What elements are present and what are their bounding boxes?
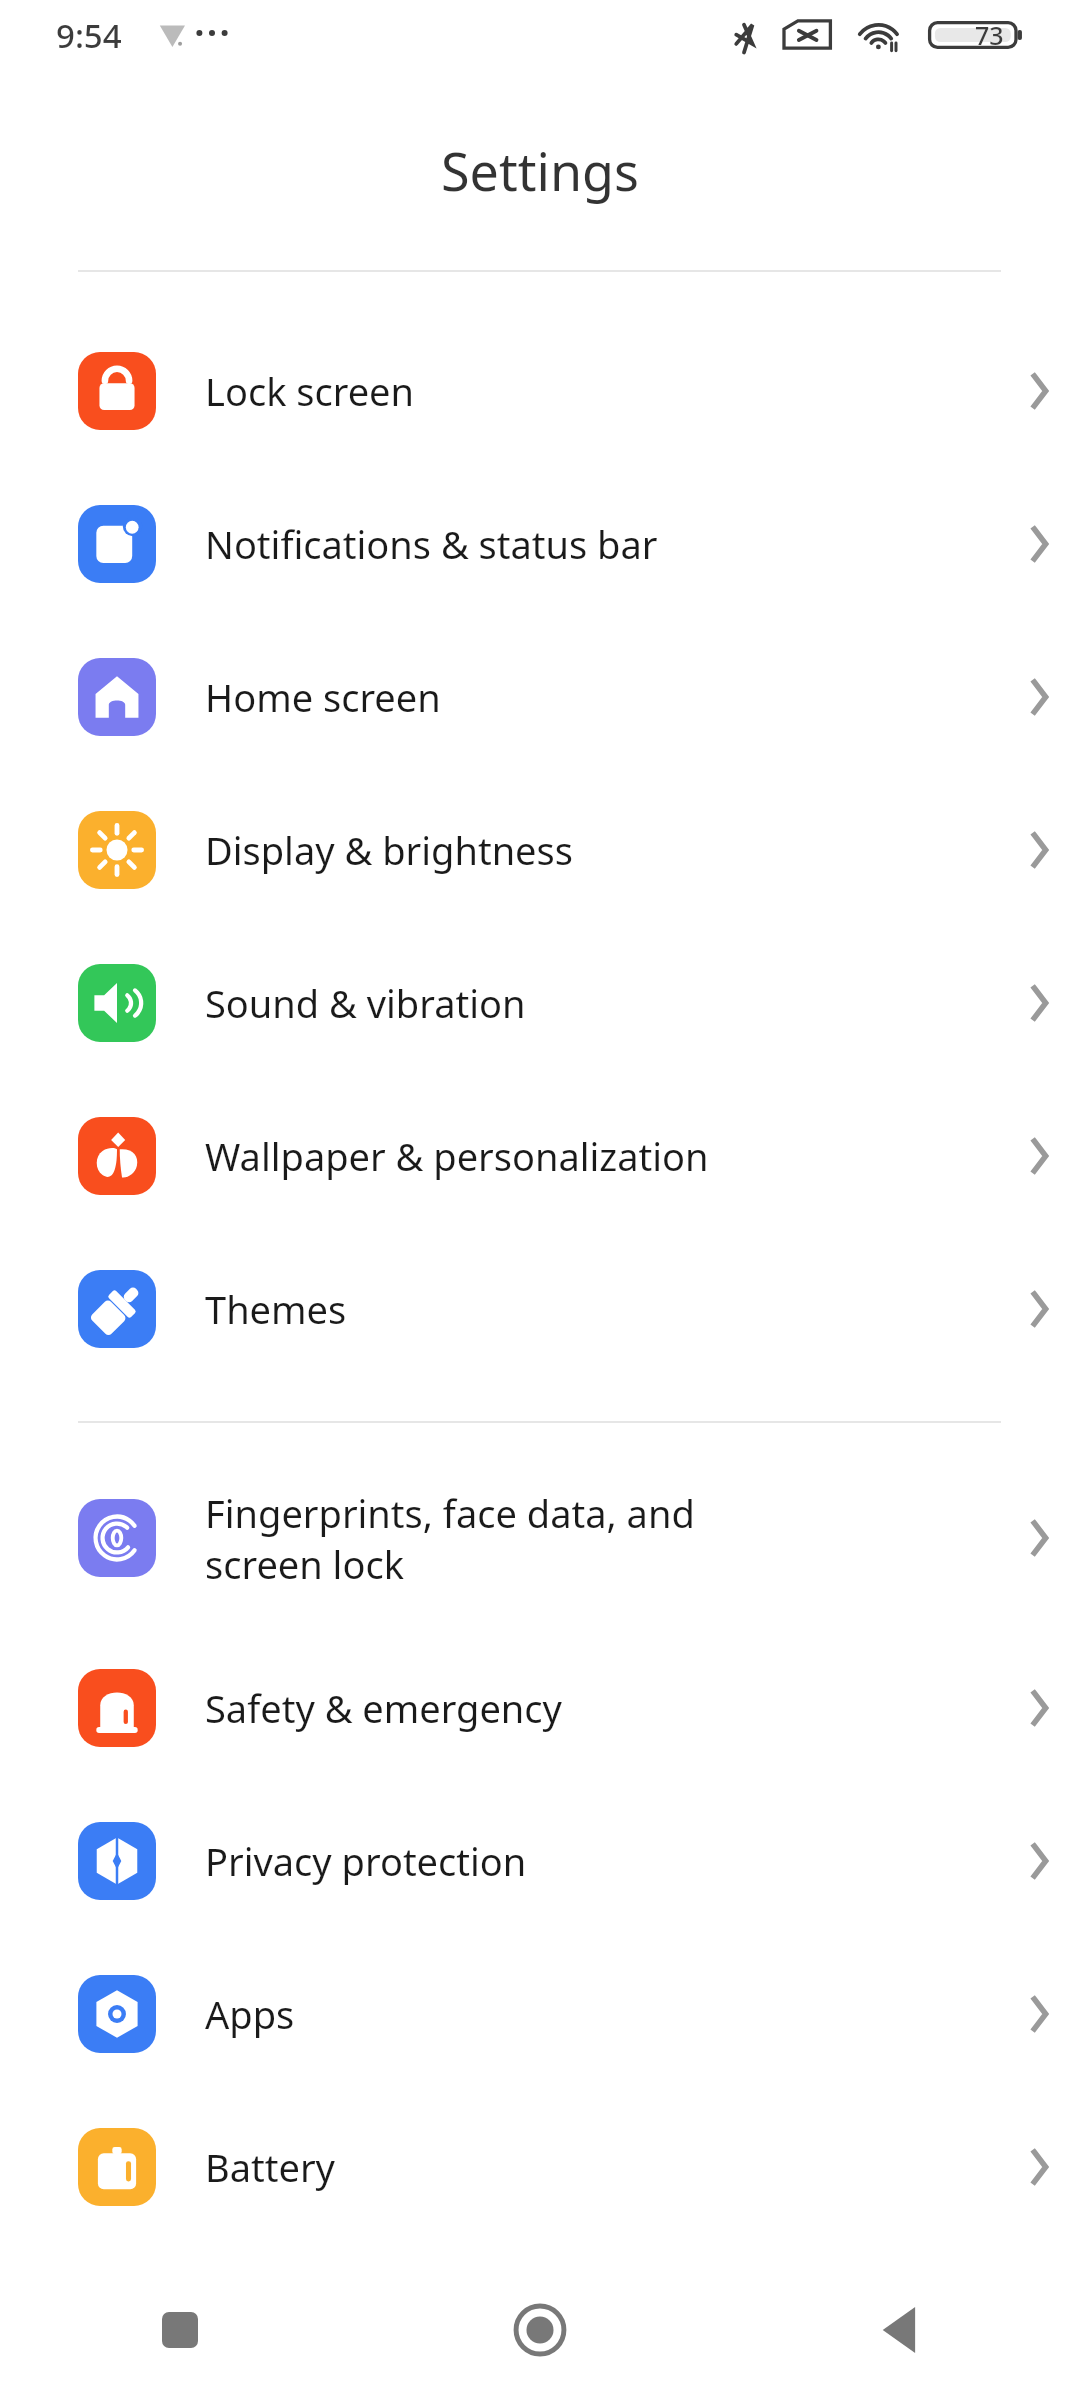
staticText: Display & brightness xyxy=(205,824,1000,876)
other: Privacy protection, open xyxy=(1000,1784,1080,1937)
staticText: 9:54 xyxy=(56,13,122,58)
button[interactable]: Safety & emergency xyxy=(0,1631,1080,1784)
button[interactable]: Home screen xyxy=(0,620,1080,773)
other: Themes, open xyxy=(1000,1232,1080,1385)
button[interactable]: Privacy protection xyxy=(0,1784,1080,1937)
staticText: Apps xyxy=(205,1988,1000,2040)
other: Wallpaper & personalization, open xyxy=(1000,1079,1080,1232)
button[interactable]: Apps xyxy=(0,1937,1080,2090)
staticText: Settings xyxy=(441,135,639,206)
staticText: Sound & vibration xyxy=(205,977,1000,1029)
button[interactable]: Sound & vibration xyxy=(0,926,1080,1079)
other: Battery, open xyxy=(1000,2090,1080,2243)
staticText: Themes xyxy=(205,1283,1000,1335)
button[interactable]: Fingerprints, face data, and screen lock xyxy=(0,1445,1080,1631)
staticText: Battery xyxy=(205,2141,1000,2193)
button[interactable]: Wallpaper & personalization xyxy=(0,1079,1080,1232)
other: Sound & vibration, open xyxy=(1000,926,1080,1079)
other: Notifications & status bar, open xyxy=(1000,467,1080,620)
staticText: Home screen xyxy=(205,671,1000,723)
other: Lock screen, open xyxy=(1000,314,1080,467)
other: Apps, open xyxy=(1000,1937,1080,2090)
other: Display & brightness, open xyxy=(1000,773,1080,926)
other: Fingerprints, face data, and screen lock… xyxy=(1000,1445,1080,1631)
staticText: Notifications & status bar xyxy=(205,518,1000,570)
staticText: Fingerprints, face data, and screen lock xyxy=(205,1487,1000,1590)
staticText: Lock screen xyxy=(205,365,1000,417)
button[interactable]: Battery xyxy=(0,2090,1080,2243)
button[interactable]: Notifications & status bar xyxy=(0,467,1080,620)
button[interactable]: Home xyxy=(360,2260,720,2400)
button[interactable]: Lock screen xyxy=(0,314,1080,467)
staticText: Privacy protection xyxy=(205,1835,1000,1887)
button[interactable]: Back xyxy=(720,2260,1080,2400)
staticText: 73 xyxy=(975,18,1004,52)
other: Home screen, open xyxy=(1000,620,1080,773)
other: Safety & emergency, open xyxy=(1000,1631,1080,1784)
button[interactable]: Recent apps xyxy=(0,2260,360,2400)
button[interactable]: Themes xyxy=(0,1232,1080,1385)
staticText: Safety & emergency xyxy=(205,1682,1000,1734)
button[interactable]: Display & brightness xyxy=(0,773,1080,926)
staticText: Wallpaper & personalization xyxy=(205,1130,1000,1182)
